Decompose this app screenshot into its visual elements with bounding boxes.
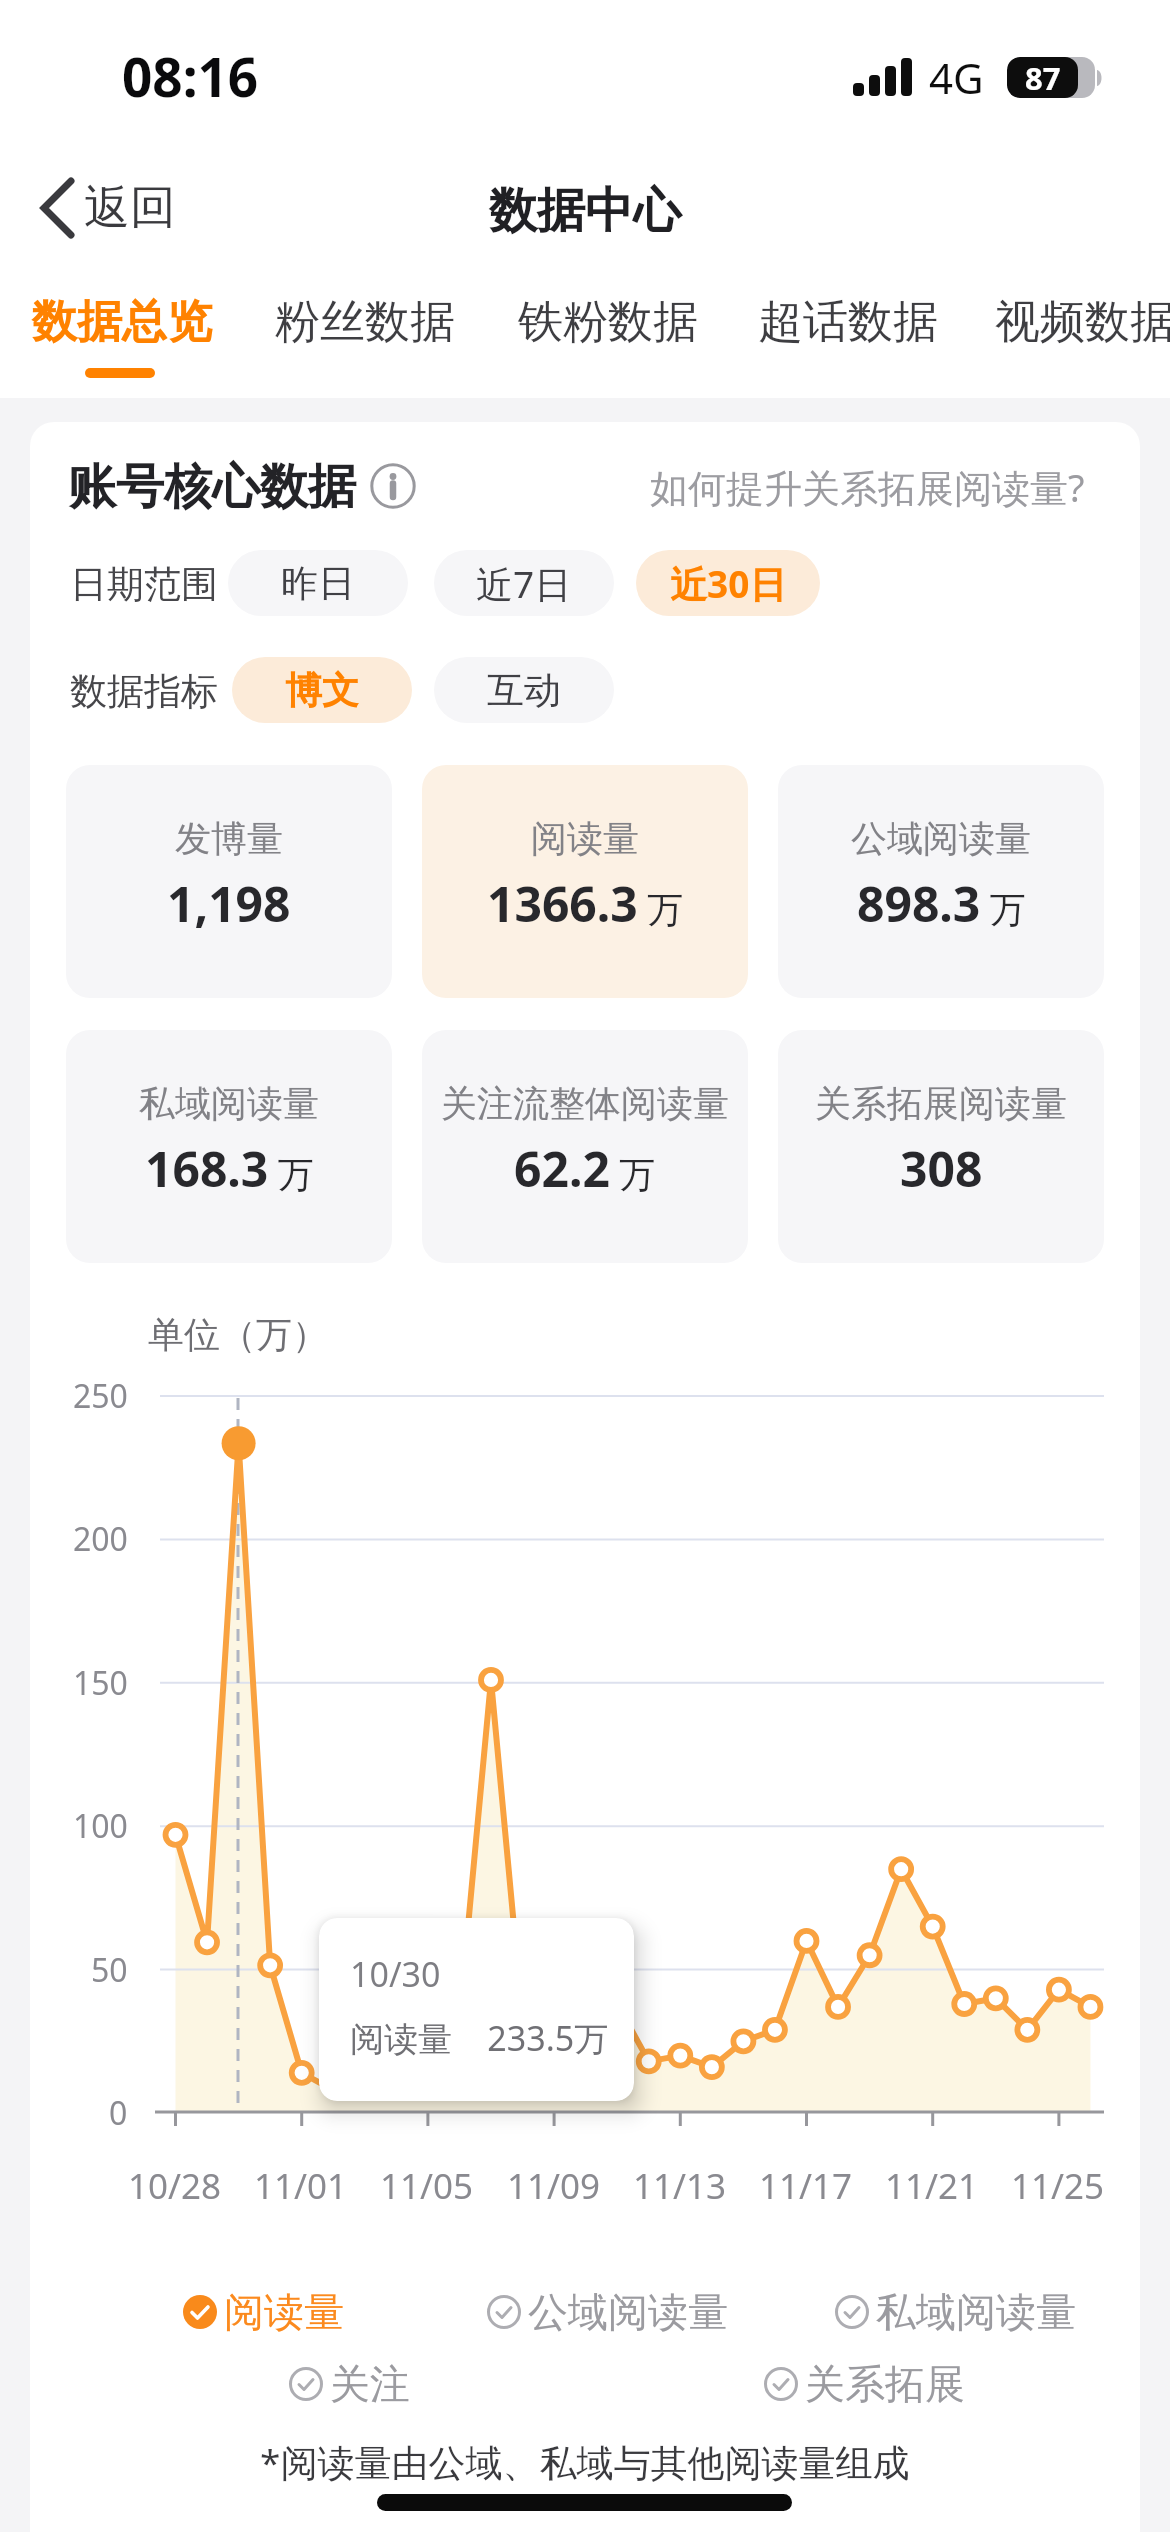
staticText: 私域阅读量 [876, 2287, 1076, 2337]
button[interactable]: 私域阅读量 [835, 2283, 1076, 2341]
staticText: 62.2 万 [514, 1136, 656, 1201]
staticText: 关系拓展 [805, 2359, 965, 2409]
staticText: 11/09 [507, 2162, 601, 2210]
staticText: 阅读量 [531, 816, 639, 861]
staticText: 168.3 万 [145, 1136, 314, 1201]
staticText: *阅读量由公域、私域与其他阅读量组成 [260, 2436, 910, 2487]
button[interactable]: 阅读量 [183, 2283, 344, 2341]
staticText: 87 [1025, 57, 1061, 98]
button[interactable]: 昨日 [228, 550, 408, 616]
button[interactable]: 近30日 [636, 550, 820, 616]
staticText: 单位（万） [148, 1312, 328, 1357]
staticText: 关系拓展阅读量 [815, 1081, 1067, 1126]
staticText: 阅读量 [224, 2287, 344, 2337]
button[interactable]: 发博量 [66, 765, 392, 998]
staticText: 互动 [487, 667, 561, 714]
staticText: 近30日 [670, 558, 787, 609]
button[interactable]: 返回 [40, 170, 176, 246]
staticText: 11/17 [759, 2162, 853, 2210]
staticText: 11/13 [633, 2162, 727, 2210]
button[interactable]: 关注 [289, 2355, 410, 2413]
staticText: 1366.3 万 [487, 871, 684, 936]
button[interactable]: 博文 [232, 657, 412, 723]
staticText: 昨日 [281, 560, 355, 607]
staticText: 返回 [84, 179, 176, 237]
button[interactable]: 近7日 [434, 550, 614, 616]
staticText: 日期范围 [70, 561, 218, 608]
staticText: 898.3 万 [857, 871, 1026, 936]
staticText: 数据指标 [70, 668, 218, 715]
staticText: 博文 [285, 667, 359, 714]
staticText: 公域阅读量 [851, 816, 1031, 861]
staticText: 公域阅读量 [528, 2287, 728, 2337]
button[interactable]: 阅读量 [422, 765, 748, 998]
staticText: 11/25 [1011, 2162, 1105, 2210]
staticText: 10/30 [350, 1951, 441, 1997]
staticText: 近7日 [476, 558, 572, 609]
staticText: 308 [900, 1136, 983, 1201]
staticText: 150 [73, 1661, 128, 1705]
button[interactable]: 关注流整体阅读量 [422, 1030, 748, 1263]
button[interactable]: 公域阅读量 [778, 765, 1104, 998]
staticText: 发博量 [175, 816, 283, 861]
button[interactable]: 私域阅读量 [66, 1030, 392, 1263]
staticText: 如何提升关系拓展阅读量? [650, 461, 1085, 513]
staticText: 4G [929, 49, 984, 106]
button[interactable]: 关系拓展 [764, 2355, 965, 2413]
staticText: 200 [73, 1517, 128, 1561]
staticText: 关注 [330, 2359, 410, 2409]
staticText: 08:16 [122, 40, 259, 112]
staticText: 私域阅读量 [139, 1081, 319, 1126]
button[interactable]: 如何提升关系拓展阅读量? [585, 461, 1085, 513]
staticText: 11/01 [254, 2162, 348, 2210]
staticText: 100 [73, 1804, 128, 1848]
button[interactable]: 公域阅读量 [487, 2283, 728, 2341]
staticText: 关注流整体阅读量 [441, 1081, 729, 1126]
staticText: 0 [109, 2091, 128, 2135]
staticText: 10/28 [128, 2162, 222, 2210]
button[interactable]: 互动 [434, 657, 614, 723]
staticText: 250 [73, 1374, 128, 1418]
staticText: 阅读量 233.5万 [350, 2015, 609, 2061]
staticText: 账号核心数据 [68, 457, 356, 517]
staticText: 1,198 [167, 871, 291, 936]
staticText: 数据中心 [489, 181, 681, 241]
button[interactable]: 关系拓展阅读量 [778, 1030, 1104, 1263]
staticText: 11/21 [885, 2162, 979, 2210]
staticText: 50 [91, 1948, 128, 1992]
staticText: 11/05 [380, 2162, 474, 2210]
